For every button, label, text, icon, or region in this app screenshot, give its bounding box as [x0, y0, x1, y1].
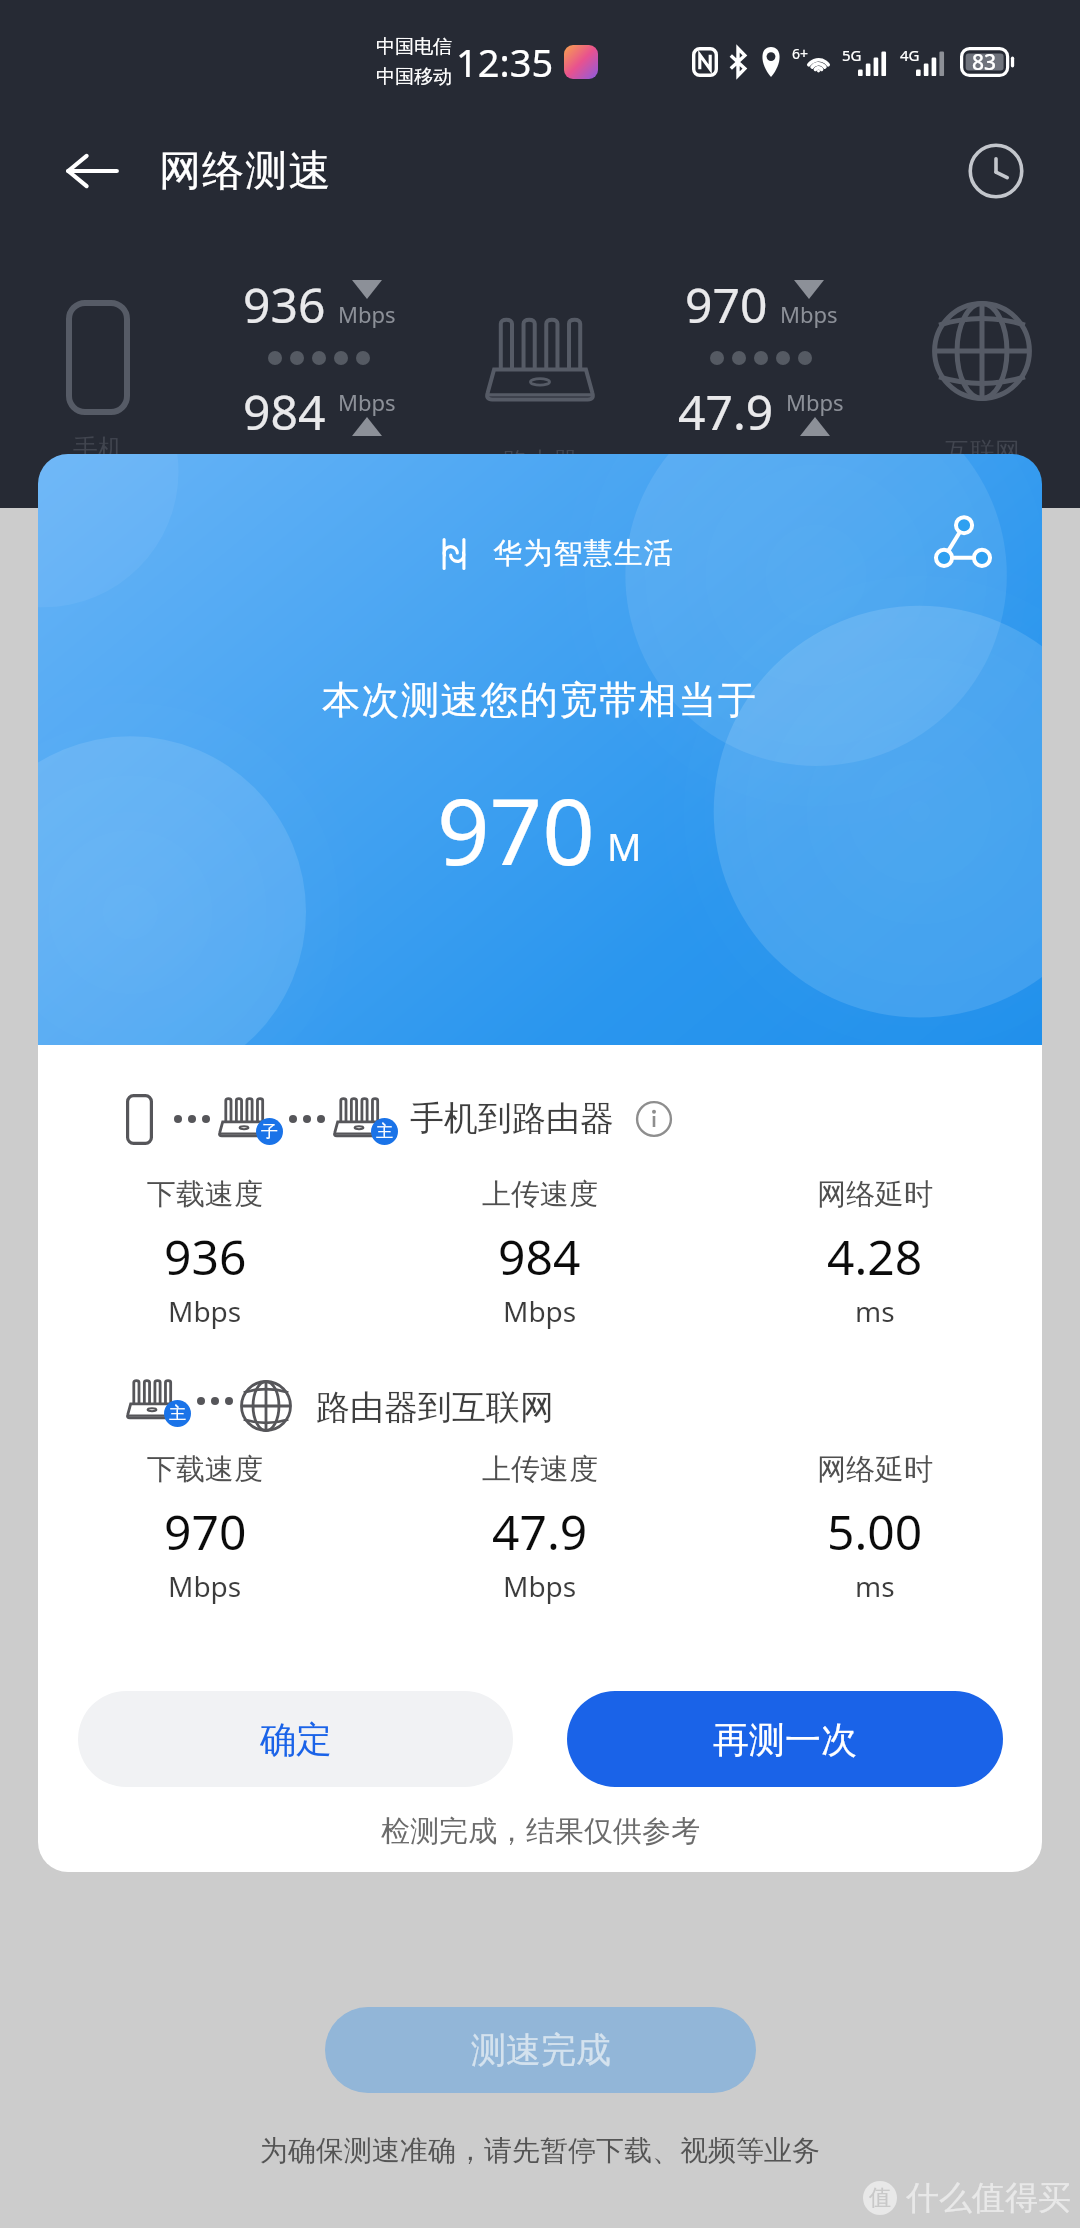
staticText: 上传速度 — [482, 1451, 598, 1488]
staticText: ms — [855, 1292, 895, 1330]
staticText: Mbps — [168, 1567, 242, 1605]
staticText: 12:35 — [456, 36, 554, 88]
button[interactable]: 测速完成 — [325, 2007, 756, 2093]
staticText: Mbps — [503, 1567, 577, 1605]
staticText: 上传速度 — [482, 1176, 598, 1213]
button[interactable]: Share — [920, 499, 1006, 585]
button[interactable]: Info — [632, 1097, 676, 1141]
staticText: 6+ — [792, 44, 809, 63]
staticText: 下载速度 — [147, 1176, 263, 1213]
staticText: 网络测速 — [159, 145, 332, 198]
staticText: 中国电信 — [376, 35, 452, 59]
staticText: 4.28 — [827, 1224, 923, 1289]
staticText: Mbps — [338, 387, 396, 417]
staticText: 主 — [376, 1121, 393, 1142]
staticText: 路由器到互联网 — [316, 1386, 554, 1429]
staticText: 测速完成 — [471, 2028, 611, 2072]
staticText: Mbps — [780, 299, 838, 329]
staticText: 984 — [243, 379, 326, 444]
staticText: 5G — [842, 45, 862, 65]
staticText: 4G — [900, 45, 920, 65]
staticText: 83 — [972, 48, 997, 77]
staticText: 970 — [437, 767, 595, 892]
staticText: M — [607, 820, 642, 872]
staticText: 5.00 — [827, 1499, 923, 1564]
staticText: Mbps — [786, 387, 844, 417]
staticText: ms — [855, 1567, 895, 1605]
staticText: Mbps — [168, 1292, 242, 1330]
staticText: 手机 — [73, 433, 123, 464]
staticText: 值 — [869, 2184, 891, 2212]
button[interactable]: History — [956, 131, 1036, 211]
staticText: 确定 — [260, 1717, 332, 1762]
staticText: 中国移动 — [376, 65, 452, 89]
button[interactable]: 确定 — [78, 1691, 513, 1787]
staticText: 936 — [243, 272, 326, 337]
staticText: Mbps — [338, 299, 396, 329]
staticText: 检测完成，结果仅供参考 — [381, 1813, 700, 1850]
staticText: 路由器 — [503, 446, 578, 477]
staticText: 网络延时 — [817, 1176, 933, 1213]
staticText: 970 — [164, 1499, 247, 1564]
staticText: 手机到路由器 — [410, 1097, 614, 1140]
staticText: 本次测速您的宽带相当于 — [322, 676, 758, 724]
button[interactable]: Back — [52, 131, 132, 211]
staticText: Mbps — [503, 1292, 577, 1330]
staticText: 网络延时 — [817, 1451, 933, 1488]
staticText: 47.9 — [492, 1499, 588, 1564]
staticText: 为确保测速准确，请先暂停下载、视频等业务 — [260, 2133, 820, 2168]
staticText: 主 — [169, 1403, 186, 1424]
staticText: 47.9 — [678, 379, 774, 444]
staticText: 子 — [261, 1121, 278, 1142]
button[interactable]: 再测一次 — [567, 1691, 1003, 1787]
staticText: 什么值得买 — [906, 2177, 1071, 2219]
staticText: 再测一次 — [713, 1717, 857, 1762]
staticText: 互联网 — [945, 436, 1020, 467]
staticText: 华为智慧生活 — [493, 535, 673, 572]
staticText: 936 — [164, 1224, 247, 1289]
staticText: 984 — [498, 1224, 581, 1289]
staticText: 970 — [685, 272, 768, 337]
staticText: 下载速度 — [147, 1451, 263, 1488]
